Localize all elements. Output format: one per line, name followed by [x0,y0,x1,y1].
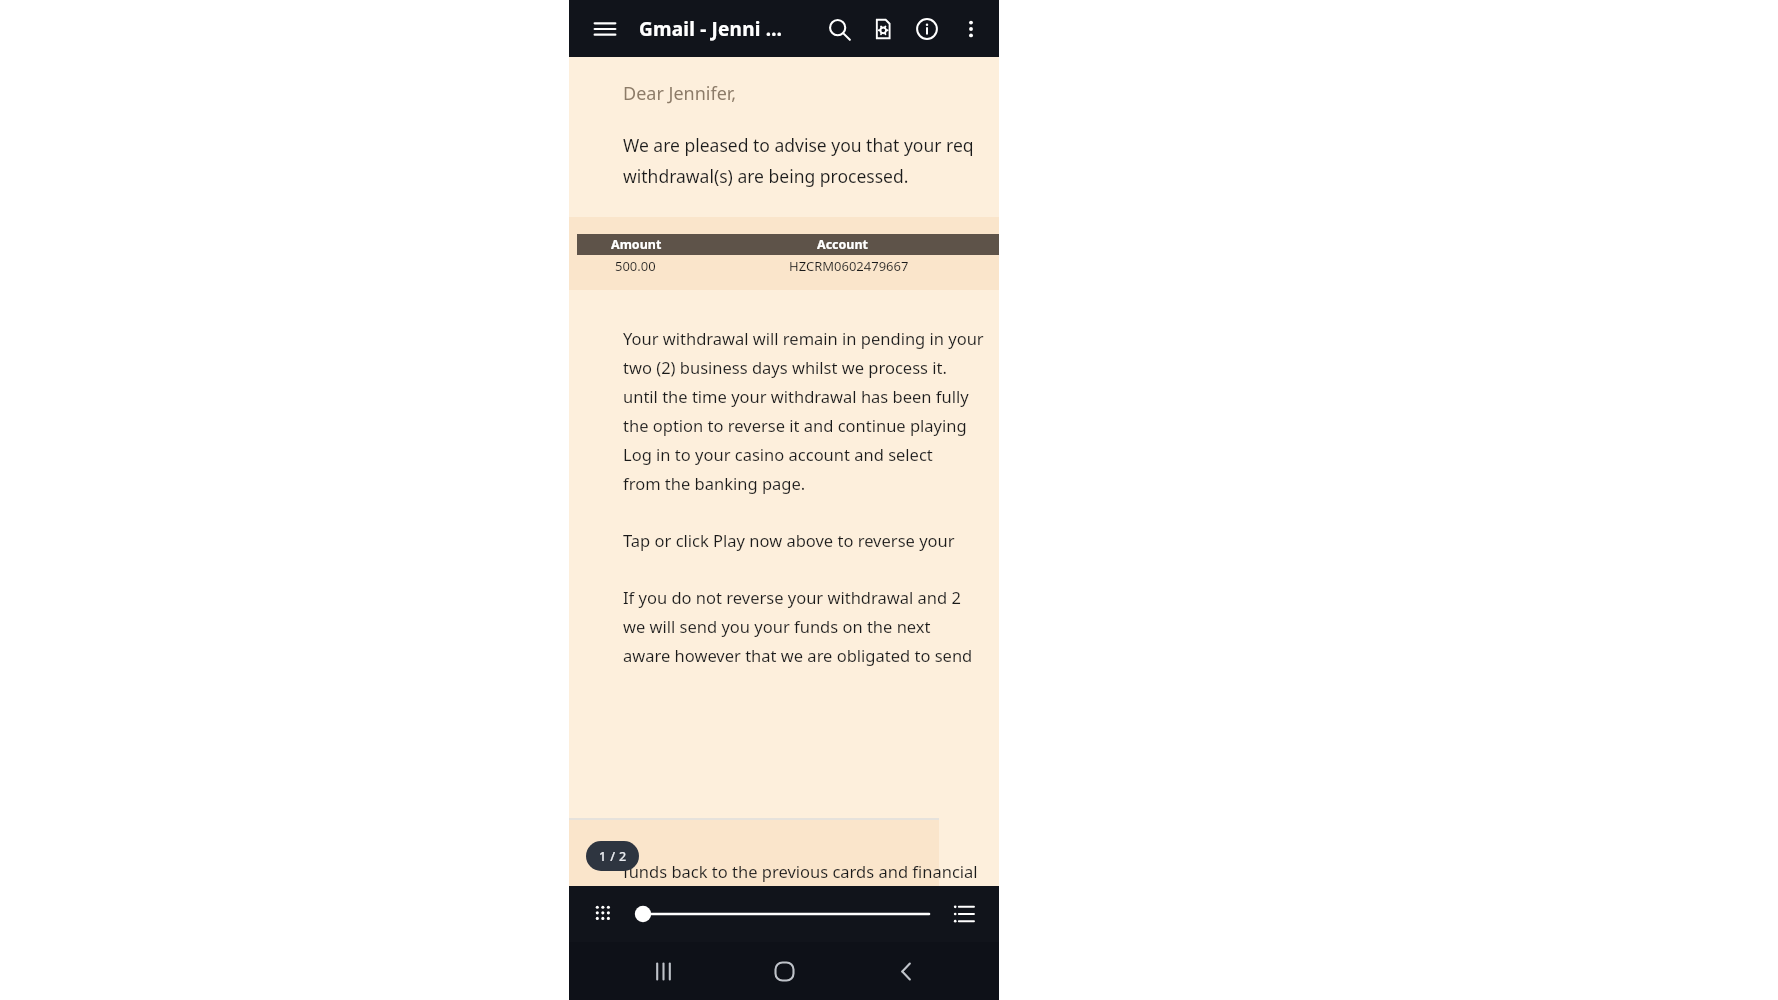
staticText: If you do not reverse your withdrawal an… [623,586,993,608]
button[interactable]: Page slider [635,894,931,934]
staticText: Your withdrawal will remain in pending i… [623,327,993,349]
staticText: we will send you your funds on the next … [623,615,993,637]
button[interactable]: Menu [585,9,625,49]
button[interactable]: Document settings [861,7,905,51]
button[interactable]: List view [943,893,985,935]
staticText: two (2) business days whilst we process … [623,356,993,378]
staticText: 500.00 [615,257,656,275]
button[interactable]: Info [905,7,949,51]
button[interactable]: Search [817,7,861,51]
staticText: Amount [611,236,662,253]
staticText: Log in to your casino account and select… [623,443,993,465]
staticText: aware however that we are obligated to s… [623,644,993,666]
staticText: We are pleased to advise you that your r… [623,133,974,157]
staticText: from the banking page. [623,472,806,494]
staticText: 1 / 2 [599,848,627,865]
staticText: Account [817,236,869,253]
button[interactable]: Grid view [583,893,625,935]
staticText: Tap or click Play now above to reverse y… [623,529,993,551]
button[interactable]: More options [949,7,993,51]
button[interactable]: Home [756,943,812,999]
staticText: HZCRM0602479667 [789,257,909,275]
button[interactable]: Recent apps [635,943,691,999]
button[interactable]: Back [878,943,934,999]
staticText: withdrawal(s) are being processed. [623,164,909,188]
staticText: Gmail - Jenni … [639,16,783,42]
staticText: the option to reverse it and continue pl… [623,414,993,436]
staticText: Dear Jennifer, [623,81,737,106]
staticText: funds back to the previous cards and fin… [623,860,993,882]
button[interactable]: 1 / 2 [586,841,639,871]
staticText: until the time your withdrawal has been … [623,385,993,407]
